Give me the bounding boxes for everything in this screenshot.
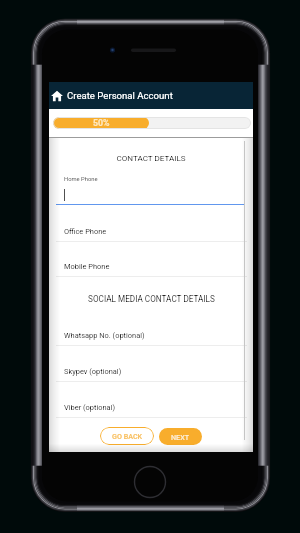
- staticText: SOCIAL MEDIA CONTACT DETAILS: [88, 294, 215, 304]
- staticText: Whatsapp No. (optional): [64, 331, 145, 340]
- staticText: Mobile Phone: [64, 262, 110, 271]
- staticText: Skypev (optional): [64, 367, 122, 376]
- staticText: Create Personal Account: [67, 90, 173, 101]
- staticText: CONTACT DETAILS: [116, 153, 186, 162]
- button[interactable]: Mobile Phone: [49, 242, 253, 277]
- button[interactable]: Home Phone: [49, 172, 253, 204]
- other: Home: [51, 90, 63, 102]
- button[interactable]: NEXT: [159, 428, 202, 445]
- staticText: 50%: [93, 118, 110, 128]
- button[interactable]: Home: [49, 82, 253, 109]
- staticText: Viber (optional): [64, 403, 116, 412]
- button[interactable]: 50%: [53, 117, 251, 129]
- staticText: Home Phone: [64, 176, 98, 183]
- button[interactable]: Whatsapp No. (optional): [49, 311, 253, 346]
- button[interactable]: Office Phone: [49, 204, 253, 242]
- button[interactable]: Skypev (optional): [49, 346, 253, 382]
- button[interactable]: GO BACK: [100, 427, 154, 445]
- button[interactable]: Viber (optional): [49, 382, 253, 418]
- staticText: NEXT: [171, 433, 190, 441]
- staticText: GO BACK: [112, 432, 143, 440]
- staticText: Office Phone: [64, 227, 107, 236]
